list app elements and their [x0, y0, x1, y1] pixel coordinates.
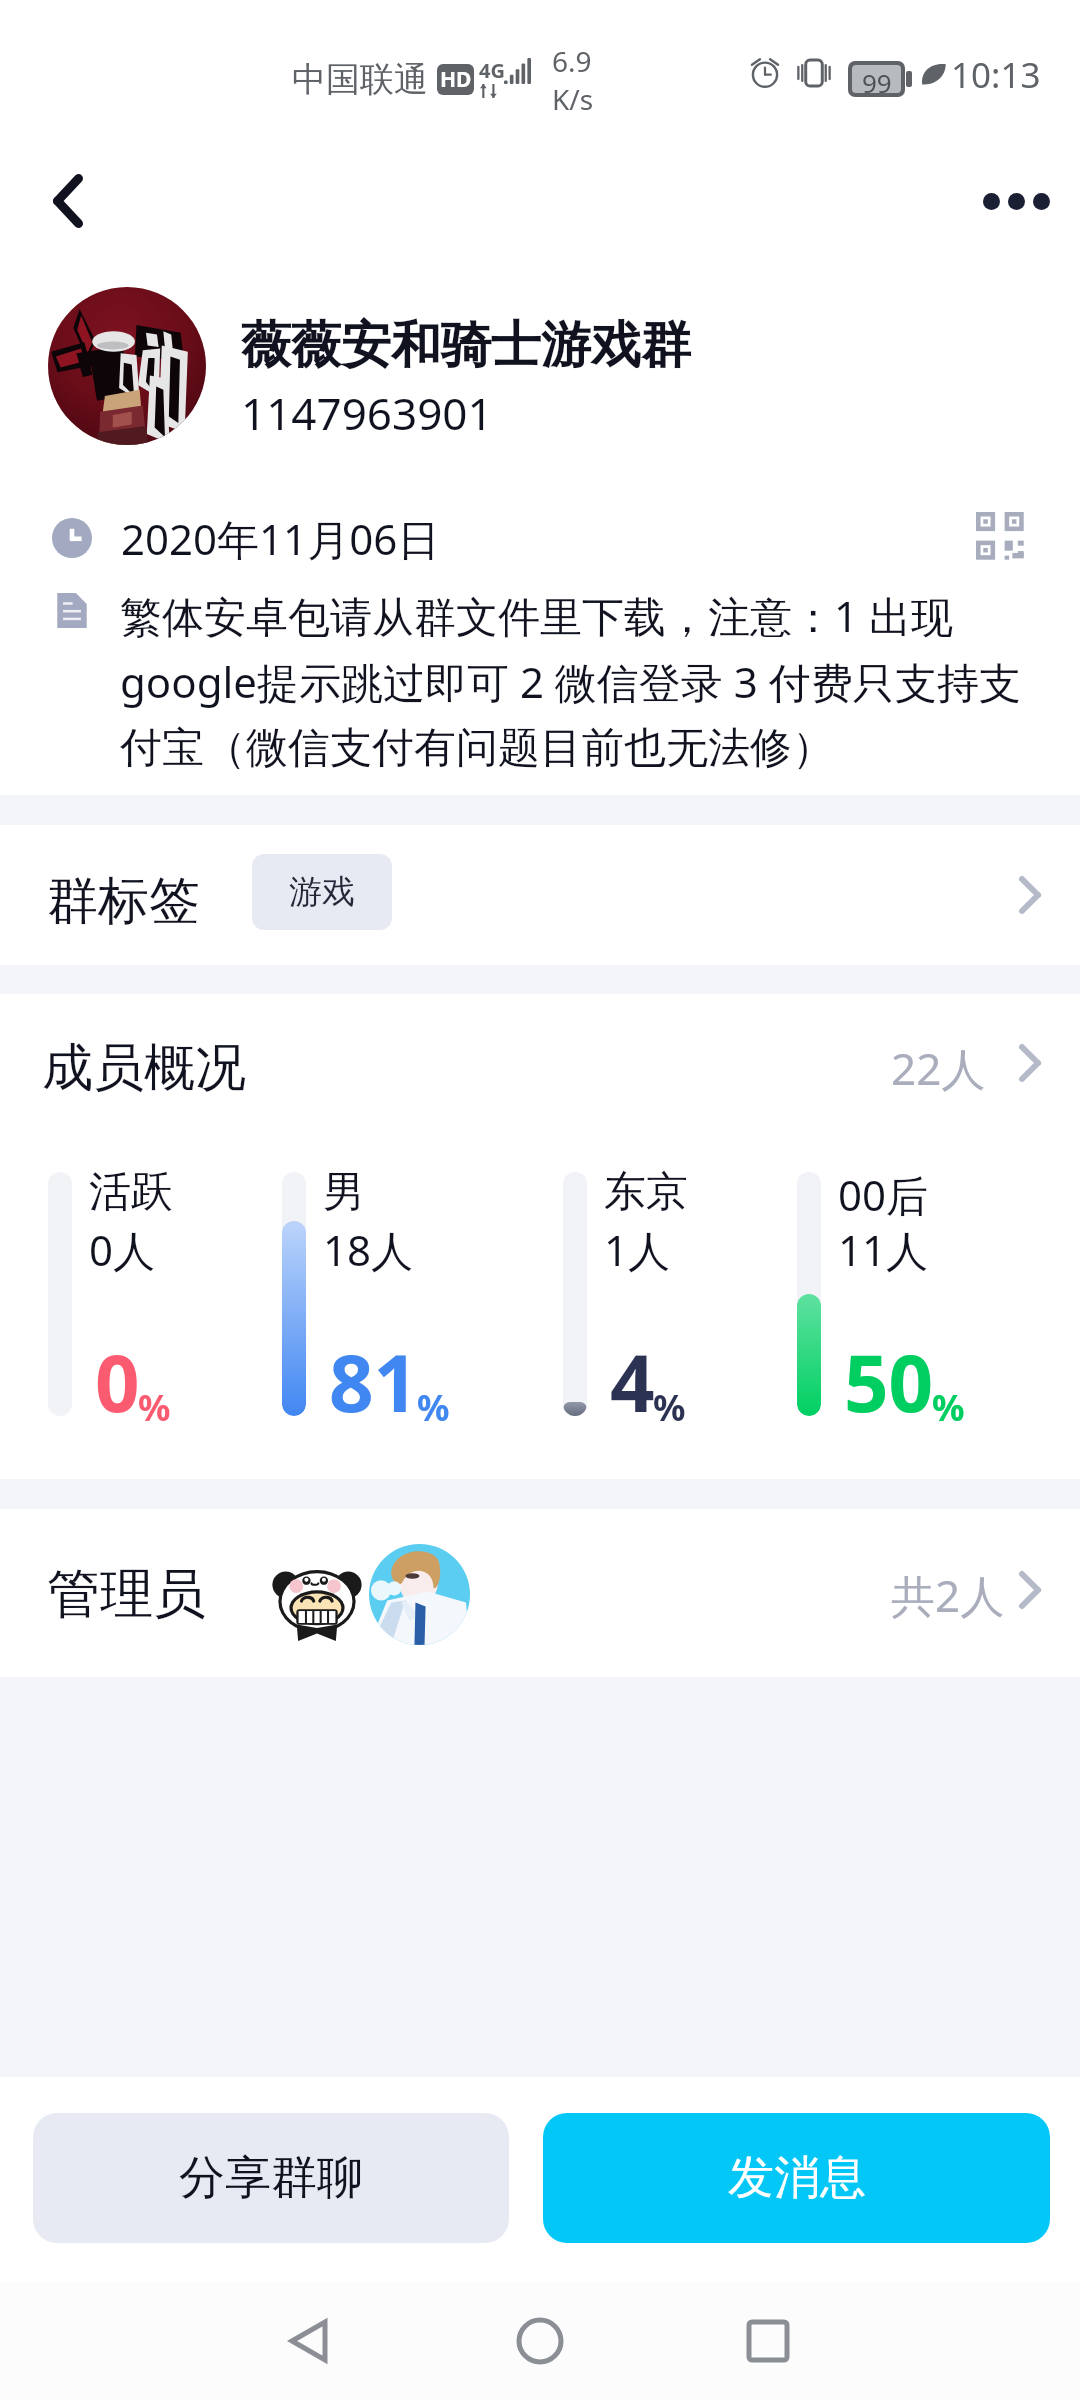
staticText: 0	[95, 1329, 140, 1435]
button[interactable]: 00后	[797, 1172, 1027, 1416]
staticText: 4	[610, 1329, 655, 1435]
staticText: %	[138, 1383, 171, 1432]
button[interactable]: Group QR code	[962, 498, 1040, 576]
button[interactable]: 薇薇安和骑士游戏群	[0, 270, 1080, 470]
button[interactable]: 男	[282, 1172, 563, 1416]
staticText: 22人	[891, 1038, 986, 1098]
staticText: 11人	[838, 1221, 929, 1278]
button[interactable]: Back	[250, 2282, 370, 2400]
staticText: 99	[862, 65, 892, 93]
button[interactable]: Recent apps	[708, 2282, 828, 2400]
staticText: 2020年11月06日	[121, 510, 440, 567]
staticText: 游戏	[289, 871, 355, 913]
staticText: 4G	[479, 57, 505, 84]
button[interactable]: 群标签	[0, 825, 1080, 965]
staticText: 0人	[89, 1221, 156, 1278]
staticText: 男	[323, 1166, 365, 1219]
button[interactable]: 发消息	[543, 2113, 1050, 2243]
staticText: 中国联通	[292, 58, 428, 101]
button[interactable]: 繁体安卓包请从群文件里下载，注意：1 出现google提示跳过即可 2 微信登录…	[0, 575, 1080, 785]
staticText: 管理员	[47, 1561, 206, 1628]
staticText: %	[653, 1383, 686, 1432]
button[interactable]: 东京	[563, 1172, 797, 1416]
staticText: K/s	[552, 80, 594, 118]
staticText: 6.9	[552, 42, 592, 80]
button[interactable]: 成员概况	[0, 994, 1080, 1114]
staticText: 00后	[838, 1166, 929, 1223]
staticText: 分享群聊	[179, 2149, 363, 2207]
staticText: 1人	[604, 1221, 671, 1278]
button[interactable]: 分享群聊	[33, 2113, 509, 2243]
button[interactable]: 2020年11月06日	[0, 490, 1080, 570]
button[interactable]: 管理员	[0, 1509, 1080, 1677]
button[interactable]: Home	[480, 2282, 600, 2400]
button[interactable]: 活跃	[48, 1172, 282, 1416]
staticText: 10:13	[951, 51, 1041, 99]
staticText: 薇薇安和骑士游戏群	[241, 314, 691, 377]
staticText: 81	[329, 1329, 419, 1435]
staticText: 活跃	[89, 1166, 173, 1219]
staticText: %	[932, 1383, 965, 1432]
staticText: HD	[440, 65, 472, 94]
staticText: 18人	[323, 1221, 414, 1278]
staticText: 东京	[604, 1166, 688, 1219]
button[interactable]: Back	[22, 155, 114, 247]
button[interactable]: More options	[970, 155, 1062, 247]
staticText: 发消息	[728, 2149, 866, 2207]
staticText: 成员概况	[42, 1036, 246, 1100]
staticText: 共2人	[891, 1565, 1005, 1625]
staticText: %	[417, 1383, 450, 1432]
staticText: 繁体安卓包请从群文件里下载，注意：1 出现google提示跳过即可 2 微信登录…	[120, 587, 1036, 774]
staticText: 1147963901	[241, 383, 493, 443]
staticText: 50	[844, 1329, 934, 1435]
staticText: 群标签	[47, 869, 200, 933]
